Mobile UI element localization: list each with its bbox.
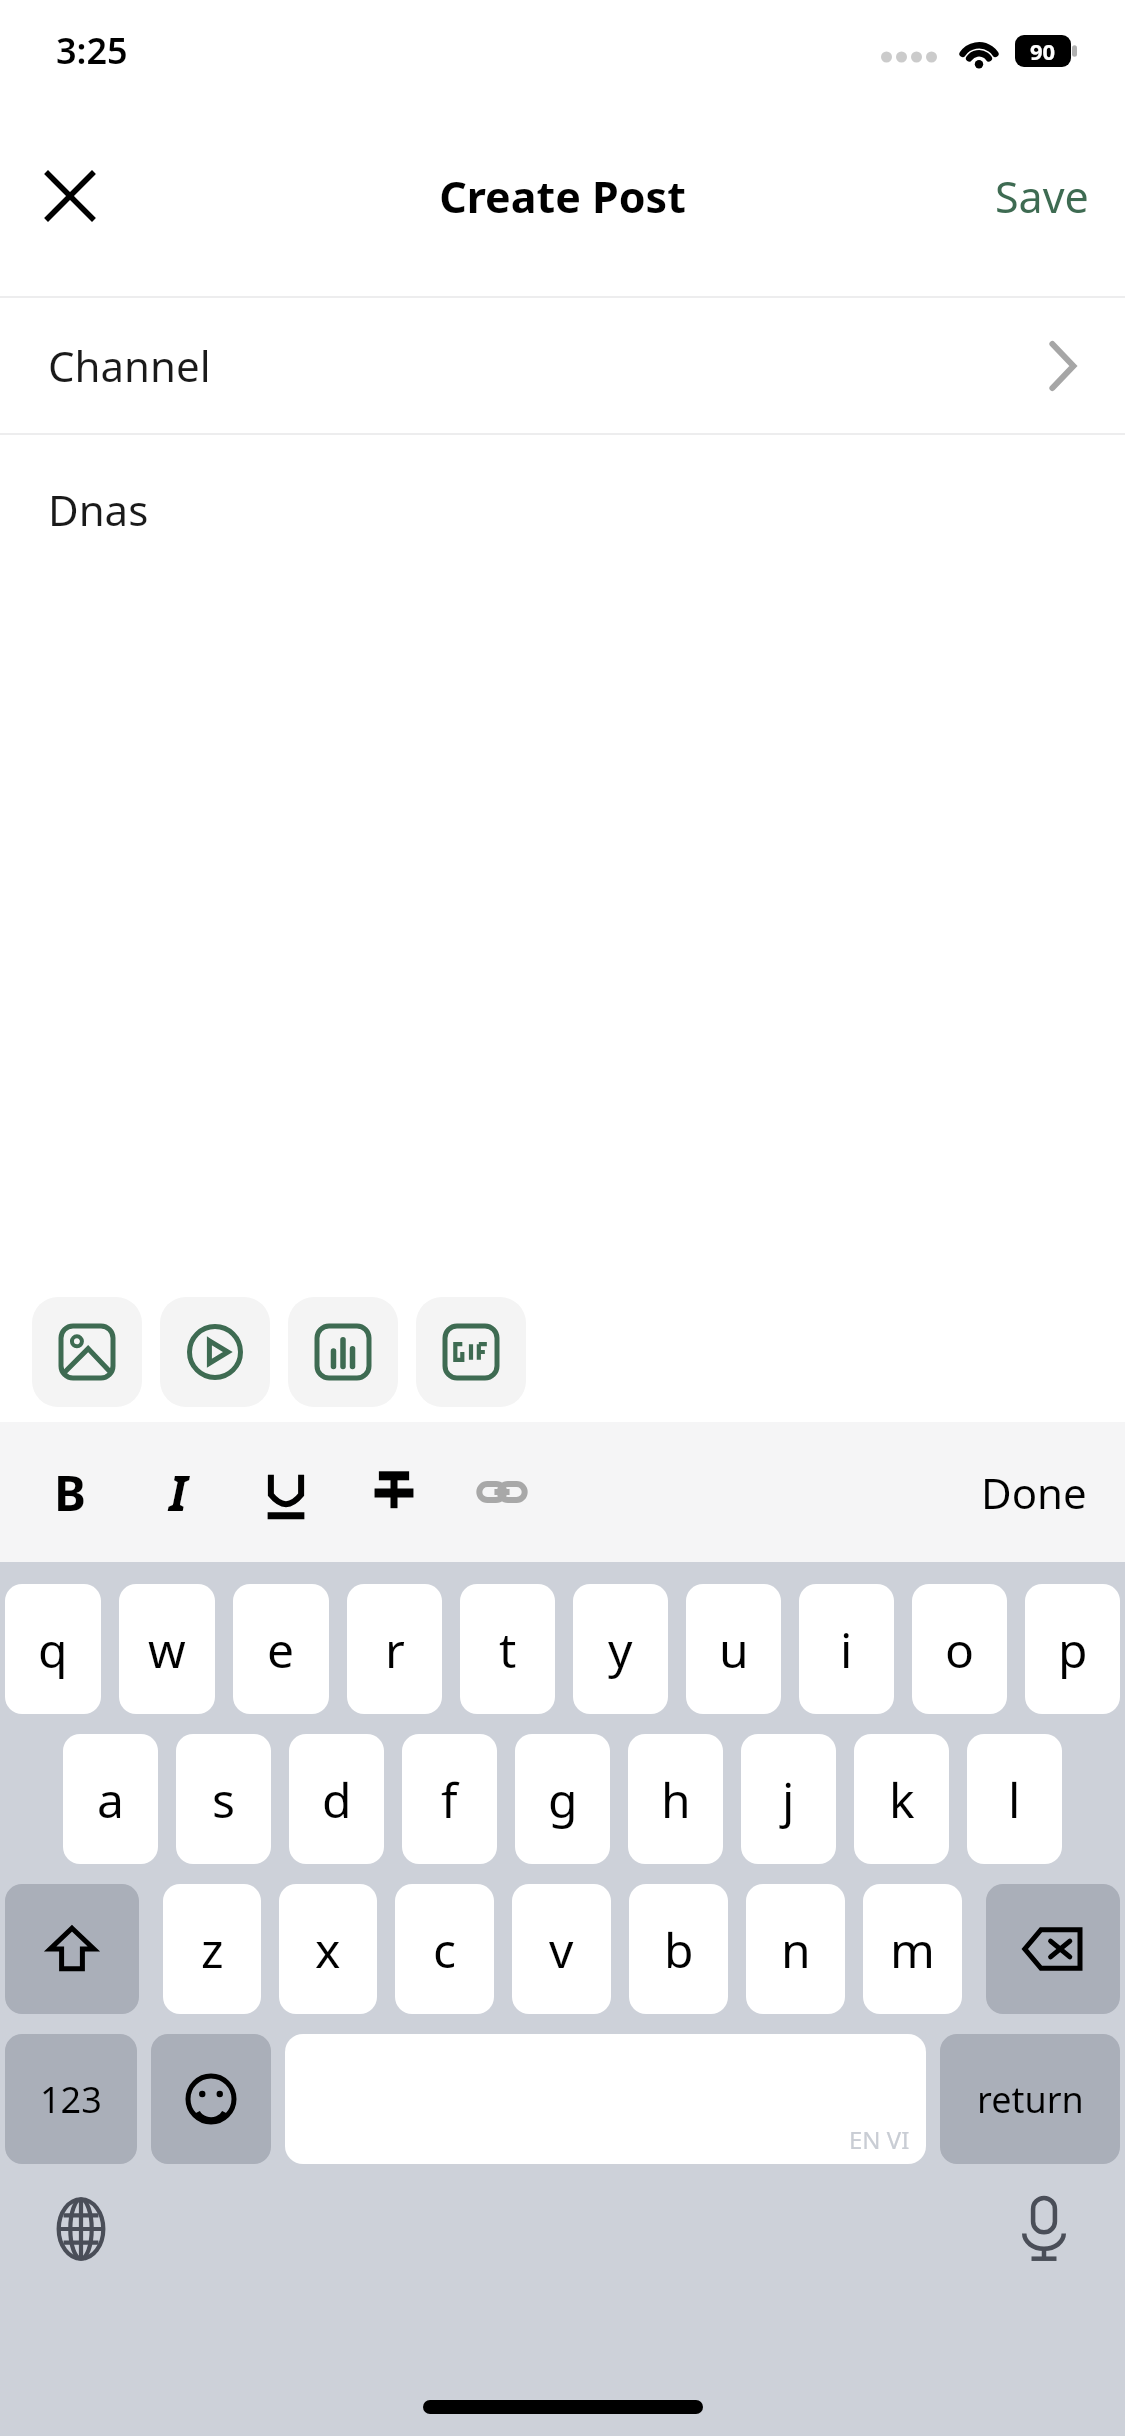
staticText: z [201, 1917, 224, 1982]
staticText: g [548, 1767, 578, 1832]
button[interactable]: d [289, 1734, 384, 1864]
button[interactable]: Insert link [448, 1437, 556, 1547]
staticText: m [890, 1917, 935, 1982]
button[interactable]: s [176, 1734, 271, 1864]
staticText: a [97, 1767, 124, 1832]
staticText: t [499, 1617, 517, 1682]
staticText: v [549, 1917, 574, 1982]
staticText: r [385, 1617, 405, 1682]
button[interactable]: Emoji [151, 2034, 271, 2164]
button[interactable]: q [5, 1584, 101, 1714]
staticText: Create Post [439, 167, 686, 226]
button[interactable]: Add video [160, 1297, 270, 1407]
button[interactable]: Save [979, 151, 1105, 242]
staticText: f [441, 1767, 458, 1832]
staticText: 123 [40, 2075, 102, 2124]
button[interactable]: m [863, 1884, 962, 2014]
button[interactable]: Dictate [989, 2174, 1099, 2284]
button[interactable]: Done [963, 1446, 1105, 1539]
staticText: k [889, 1767, 915, 1832]
button[interactable]: Switch keyboard language [26, 2174, 136, 2284]
staticText: y [608, 1617, 633, 1682]
button[interactable]: o [912, 1584, 1007, 1714]
button[interactable]: Close [22, 148, 118, 244]
button[interactable]: f [402, 1734, 497, 1864]
staticText: e [267, 1617, 295, 1682]
staticText: n [781, 1917, 811, 1982]
button[interactable]: Underline [232, 1437, 340, 1547]
staticText: Dnas [48, 481, 149, 538]
button[interactable]: i [799, 1584, 894, 1714]
button[interactable]: n [746, 1884, 845, 2014]
staticText: u [719, 1617, 749, 1682]
button[interactable]: k [854, 1734, 949, 1864]
staticText: return [977, 2075, 1084, 2124]
staticText: w [148, 1617, 186, 1682]
staticText: Done [981, 1464, 1087, 1521]
button[interactable]: Italic [124, 1437, 232, 1547]
staticText: 90 [1030, 36, 1056, 66]
button[interactable]: Strikethrough [340, 1437, 448, 1547]
button[interactable]: Dnas [0, 435, 1125, 1282]
button[interactable]: l [967, 1734, 1062, 1864]
button[interactable]: x [279, 1884, 377, 2014]
staticText: j [782, 1767, 795, 1832]
button[interactable]: p [1025, 1584, 1120, 1714]
button[interactable]: Bold [16, 1437, 124, 1547]
staticText: x [315, 1917, 341, 1982]
button[interactable]: Add poll [288, 1297, 398, 1407]
button[interactable]: Numbers [5, 2034, 137, 2164]
staticText: i [840, 1617, 853, 1682]
staticText: 3:25 [56, 26, 128, 75]
button[interactable]: Space [285, 2034, 926, 2164]
button[interactable]: j [741, 1734, 836, 1864]
button[interactable]: h [628, 1734, 723, 1864]
staticText: Channel [48, 337, 211, 394]
button[interactable]: Add image [32, 1297, 142, 1407]
staticText: I [169, 1460, 188, 1525]
button[interactable]: e [233, 1584, 329, 1714]
staticText: q [38, 1617, 68, 1682]
button[interactable]: Return [940, 2034, 1120, 2164]
button[interactable]: w [119, 1584, 215, 1714]
button[interactable]: t [460, 1584, 555, 1714]
button[interactable]: c [395, 1884, 494, 2014]
button[interactable]: g [515, 1734, 610, 1864]
button[interactable]: z [163, 1884, 261, 2014]
button[interactable]: r [347, 1584, 442, 1714]
staticText: s [212, 1767, 235, 1832]
staticText: p [1058, 1617, 1088, 1682]
staticText: c [433, 1917, 457, 1982]
button[interactable]: u [686, 1584, 781, 1714]
staticText: Save [995, 167, 1089, 226]
staticText: o [945, 1617, 975, 1682]
staticText: d [322, 1767, 352, 1832]
button[interactable]: Backspace [986, 1884, 1120, 2014]
staticText: EN VI [849, 2123, 910, 2156]
staticText: l [1008, 1767, 1021, 1832]
button[interactable]: Channel [0, 298, 1125, 433]
staticText: b [664, 1917, 694, 1982]
staticText: B [54, 1460, 86, 1525]
staticText: h [661, 1767, 691, 1832]
button[interactable]: b [629, 1884, 728, 2014]
button[interactable]: Shift [5, 1884, 139, 2014]
button[interactable]: y [573, 1584, 668, 1714]
button[interactable]: v [512, 1884, 611, 2014]
button[interactable]: Add GIF [416, 1297, 526, 1407]
button[interactable]: a [63, 1734, 158, 1864]
